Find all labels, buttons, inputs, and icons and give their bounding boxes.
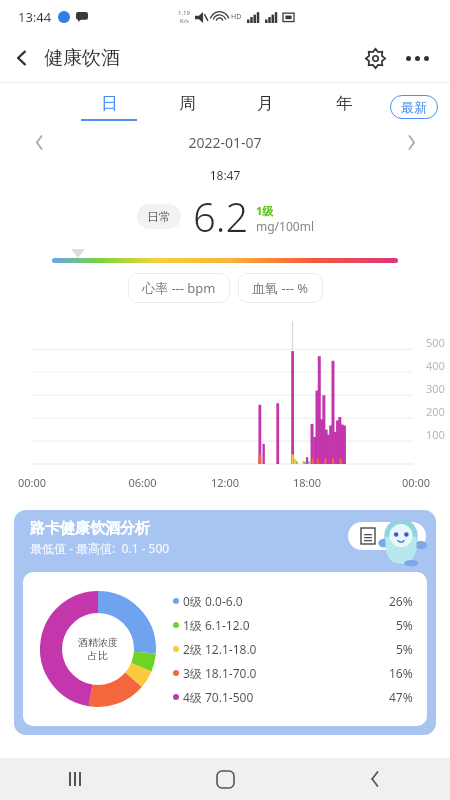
staticText: 日 <box>101 93 118 114</box>
button[interactable]: 月 <box>226 93 305 121</box>
staticText: 1级 6.1-12.0 <box>183 617 250 633</box>
staticText: 月 <box>257 93 274 114</box>
staticText: 26% <box>389 593 413 609</box>
staticText: 最低值 - 最高值: 0.1 - 500 <box>30 540 170 556</box>
staticText: 16% <box>389 665 413 681</box>
button[interactable]: Back <box>0 36 44 80</box>
staticText: 3级 18.1-70.0 <box>183 665 257 681</box>
staticText: 500 <box>426 335 445 350</box>
staticText: 47% <box>389 689 413 705</box>
button[interactable]: Next day <box>398 129 424 155</box>
button[interactable]: 心率 --- bpm <box>128 273 230 303</box>
staticText: 2022-01-07 <box>52 133 398 152</box>
staticText: 200 <box>426 404 445 419</box>
button[interactable]: 日 <box>70 93 148 121</box>
staticText: 1.19 <box>178 9 190 17</box>
button[interactable]: Home <box>150 758 300 800</box>
staticText: 酒精浓度 <box>78 636 118 649</box>
staticText: 12:00 <box>184 475 266 490</box>
staticText: 6.2 <box>193 189 249 243</box>
staticText: 占比 <box>88 649 108 662</box>
staticText: mg/100ml <box>256 218 314 234</box>
staticText: 5% <box>396 641 413 657</box>
button[interactable]: Settings <box>354 37 396 79</box>
button[interactable]: More options <box>396 37 438 79</box>
button[interactable]: Report <box>348 522 426 550</box>
staticText: HD <box>231 12 242 22</box>
staticText: 5% <box>396 617 413 633</box>
staticText: 13:44 <box>18 8 52 26</box>
button[interactable]: Recents <box>0 758 150 800</box>
staticText: 周 <box>179 93 196 114</box>
button[interactable]: 周 <box>148 93 226 121</box>
staticText: 1级 <box>256 203 274 218</box>
button[interactable]: Previous day <box>26 129 52 155</box>
staticText: 300 <box>426 381 445 396</box>
button[interactable]: 最新 <box>390 95 438 119</box>
staticText: 06:00 <box>101 475 184 490</box>
staticText: 路卡健康饮酒分析 <box>30 519 150 538</box>
staticText: 4级 70.1-500 <box>183 689 254 705</box>
staticText: 心率 --- bpm <box>142 279 216 297</box>
staticText: 00:00 <box>348 475 430 490</box>
button[interactable]: 路卡健康饮酒分析 <box>14 510 436 735</box>
staticText: 18:00 <box>266 475 348 490</box>
staticText: 健康饮酒 <box>44 46 120 70</box>
staticText: 00:00 <box>18 475 101 490</box>
staticText: 400 <box>426 358 445 373</box>
staticText: 年 <box>336 93 353 114</box>
staticText: 最新 <box>401 99 427 115</box>
button[interactable]: 年 <box>305 93 384 121</box>
staticText: 0级 0.0-6.0 <box>183 593 243 609</box>
staticText: 日常 <box>147 209 171 224</box>
staticText: K/s <box>180 17 189 25</box>
staticText: 血氧 --- % <box>252 279 309 297</box>
button[interactable]: 血氧 --- % <box>238 273 323 303</box>
button[interactable]: Back <box>300 758 450 800</box>
staticText: 2级 12.1-18.0 <box>183 641 257 657</box>
staticText: 18:47 <box>0 167 450 183</box>
staticText: 100 <box>426 427 445 442</box>
